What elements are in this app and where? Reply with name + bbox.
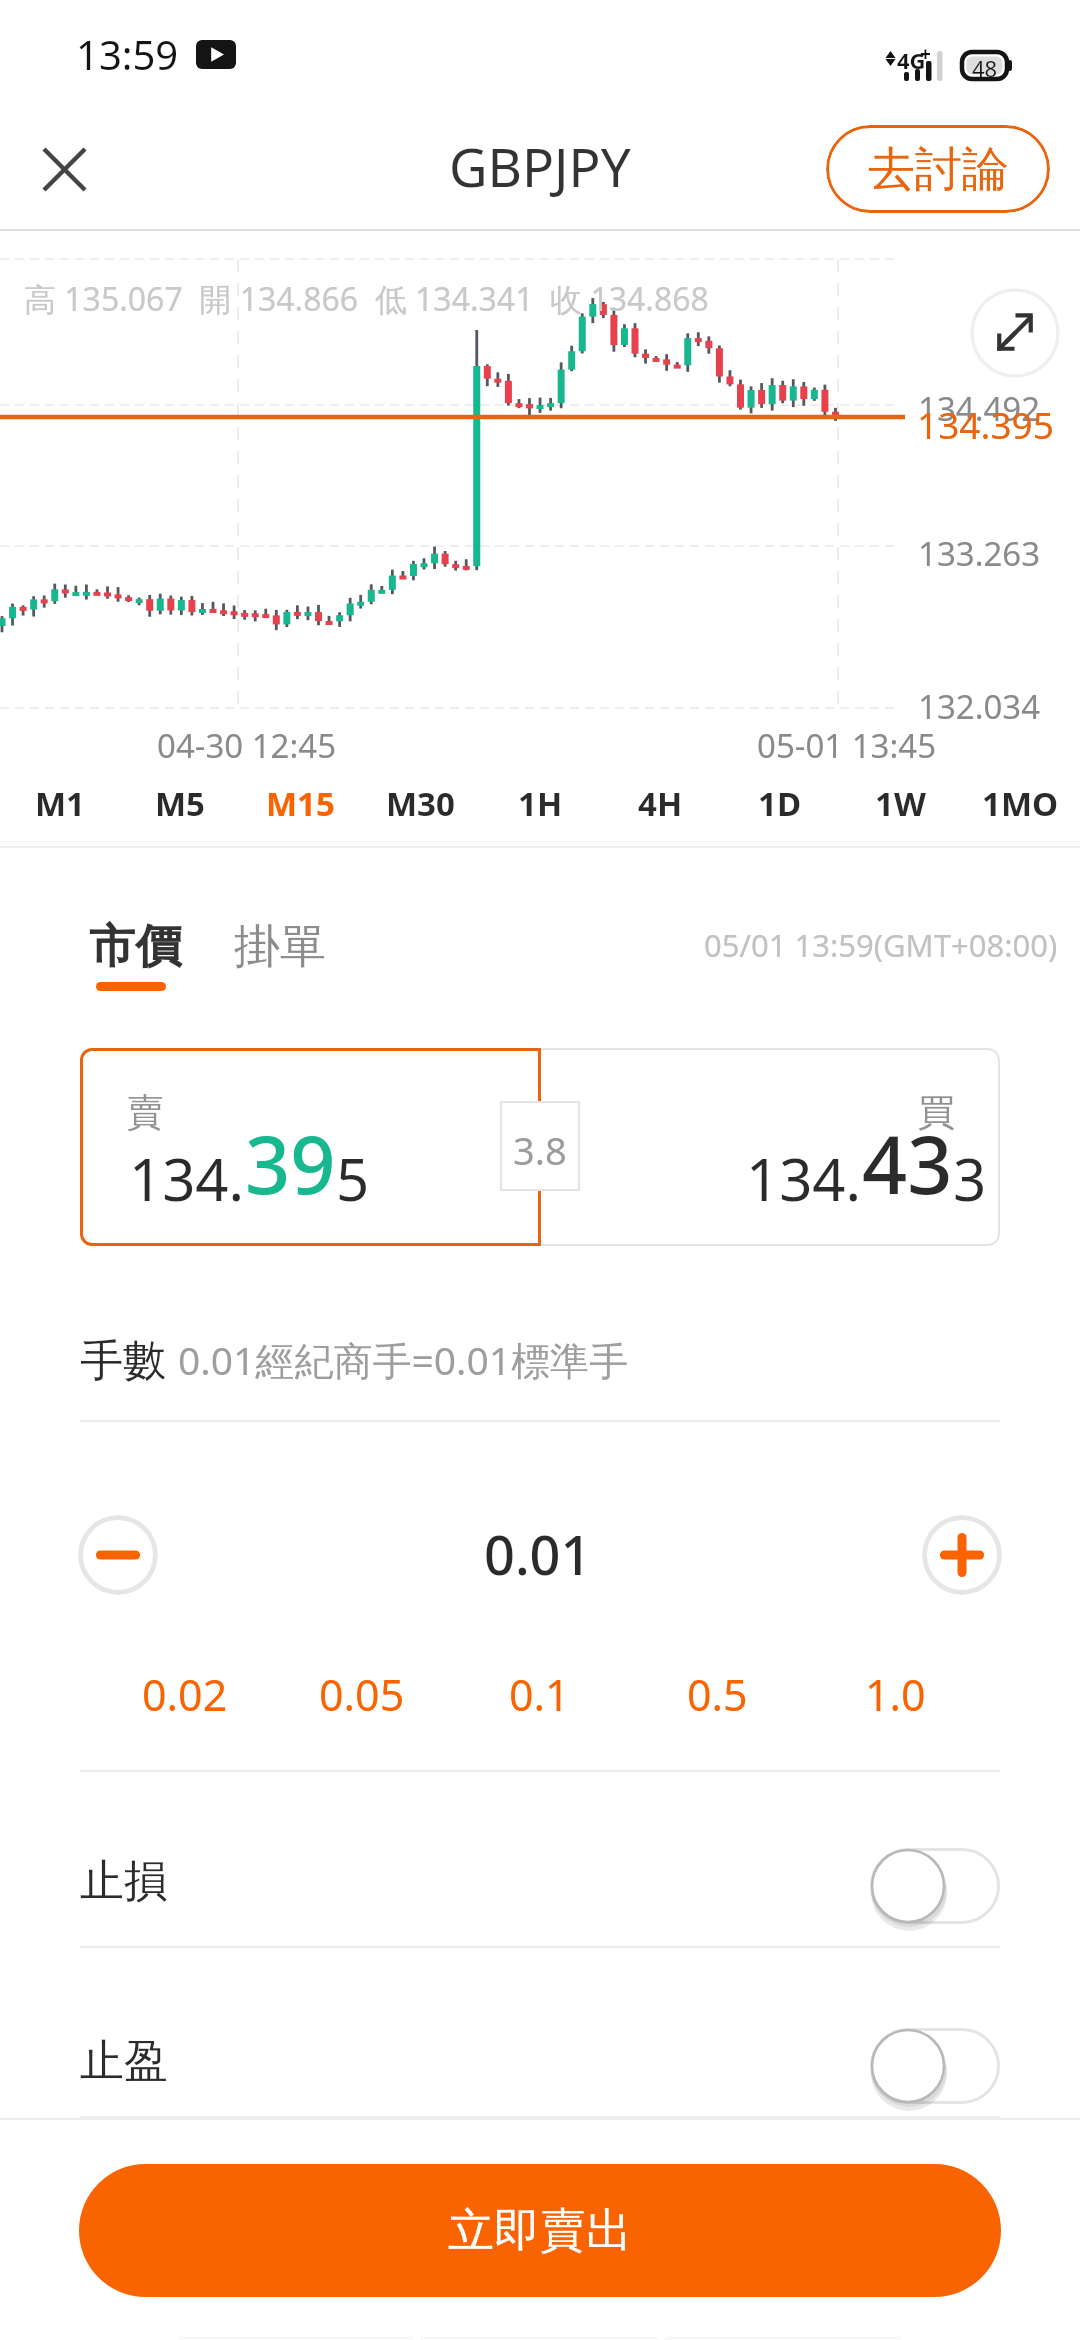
staticText: M5 xyxy=(155,781,205,826)
button[interactable]: 買 xyxy=(540,1048,1000,1246)
staticText: 134. xyxy=(746,1139,862,1218)
staticText: 05/01 13:59(GMT+08:00) xyxy=(704,924,1058,966)
staticText: 4G xyxy=(897,45,926,75)
button[interactable]: 止盈 xyxy=(0,1948,1080,2118)
button[interactable]: M15 xyxy=(240,765,360,841)
staticText: 掛單 xyxy=(234,918,326,976)
staticText: 立即賣出 xyxy=(448,2202,632,2260)
staticText: + xyxy=(920,41,931,67)
staticText: 48 xyxy=(972,53,998,83)
button[interactable]: 1MO xyxy=(960,765,1080,841)
staticText: 134. xyxy=(129,1139,245,1218)
staticText: 市價 xyxy=(89,918,181,976)
button[interactable]: 0.5 xyxy=(628,1664,806,1724)
staticText: 13:59 xyxy=(76,27,179,81)
staticText: 4H xyxy=(638,781,683,826)
button[interactable]: 1W xyxy=(840,765,960,841)
staticText: 3.8 xyxy=(513,1124,567,1176)
button[interactable]: M5 xyxy=(120,765,240,841)
staticText: 43 xyxy=(862,1110,953,1218)
staticText: 134.492 xyxy=(918,386,1041,431)
staticText: 0.5 xyxy=(687,1665,748,1724)
staticText: 賣 xyxy=(127,1089,164,1136)
staticText: 止損 xyxy=(80,1854,168,1909)
staticText: 05-01 13:45 xyxy=(757,723,937,768)
button[interactable]: 1D xyxy=(720,765,840,841)
staticText: 133.263 xyxy=(918,531,1041,576)
button[interactable]: 去討論 xyxy=(826,125,1050,213)
button[interactable]: 市價 xyxy=(89,918,181,976)
staticText: 1D xyxy=(758,781,802,826)
staticText: 132.034 xyxy=(918,684,1041,729)
staticText: 0.01 xyxy=(484,1517,592,1591)
button[interactable]: 0.02 xyxy=(96,1664,273,1724)
button[interactable]: Close xyxy=(21,126,107,212)
staticText: GBPJPY xyxy=(449,130,631,202)
button[interactable]: 0.1 xyxy=(450,1664,628,1724)
staticText: 0.02 xyxy=(142,1665,228,1724)
staticText: 0.1 xyxy=(509,1665,570,1724)
staticText: M30 xyxy=(386,781,455,826)
staticText: 高 135.067 開 134.866 低 134.341 收 134.868 xyxy=(24,277,709,321)
button[interactable]: M1 xyxy=(0,765,120,841)
staticText: 39 xyxy=(245,1110,336,1218)
staticText: 買 xyxy=(918,1089,955,1136)
button[interactable]: 1H xyxy=(480,765,600,841)
staticText: 去討論 xyxy=(868,140,1009,199)
button[interactable]: M30 xyxy=(360,765,480,841)
staticText: 1H xyxy=(518,781,563,826)
staticText: 0.05 xyxy=(319,1665,405,1724)
button[interactable]: Decrease xyxy=(78,1515,158,1595)
button[interactable]: Fullscreen xyxy=(970,288,1060,378)
button[interactable]: 0.05 xyxy=(273,1664,450,1724)
staticText: 1MO xyxy=(982,781,1059,826)
button[interactable]: 賣 xyxy=(80,1048,541,1246)
staticText: 04-30 12:45 xyxy=(157,723,337,768)
staticText: M1 xyxy=(35,781,85,826)
staticText: 1W xyxy=(875,781,926,826)
staticText: 5 xyxy=(336,1139,370,1218)
staticText: 手數 xyxy=(80,1334,166,1388)
button[interactable]: 4H xyxy=(600,765,720,841)
staticText: 134.395 xyxy=(917,399,1054,449)
button[interactable]: Increase xyxy=(922,1515,1002,1595)
staticText: M15 xyxy=(266,781,335,826)
staticText: 0.01經紀商手=0.01標準手 xyxy=(178,1333,629,1386)
staticText: 止盈 xyxy=(80,2034,168,2089)
button[interactable]: 1.0 xyxy=(806,1664,984,1724)
button[interactable]: 止損 xyxy=(0,1772,1080,1948)
staticText: 1.0 xyxy=(865,1665,926,1724)
staticText: 3 xyxy=(953,1139,987,1218)
button[interactable]: 掛單 xyxy=(234,918,326,976)
button[interactable]: 立即賣出 xyxy=(79,2164,1001,2297)
